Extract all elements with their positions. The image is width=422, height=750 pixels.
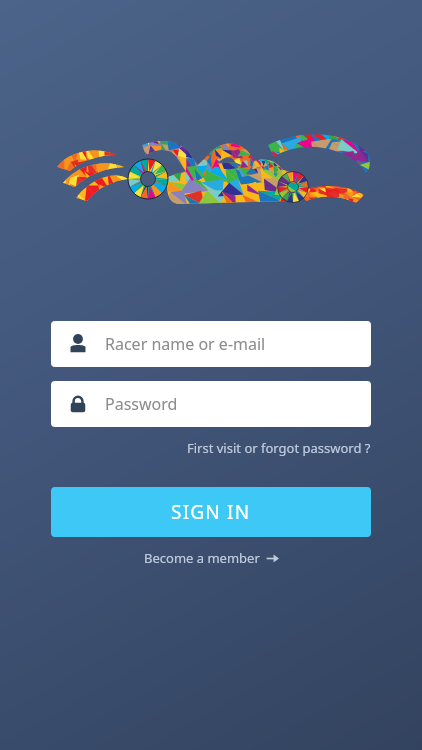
button[interactable]: SIGN IN bbox=[51, 487, 371, 537]
staticText: First visit or forgot password ? bbox=[187, 439, 371, 457]
button[interactable]: First visit or forgot password ? bbox=[51, 439, 371, 457]
staticText: Password bbox=[105, 393, 178, 415]
button[interactable]: Password bbox=[51, 381, 371, 427]
staticText: SIGN IN bbox=[171, 499, 251, 525]
button[interactable]: Racer name or e-mail bbox=[51, 321, 371, 367]
staticText: Become a member bbox=[144, 549, 260, 567]
button[interactable]: Become a member bbox=[51, 549, 371, 567]
staticText: Racer name or e-mail bbox=[105, 333, 266, 355]
